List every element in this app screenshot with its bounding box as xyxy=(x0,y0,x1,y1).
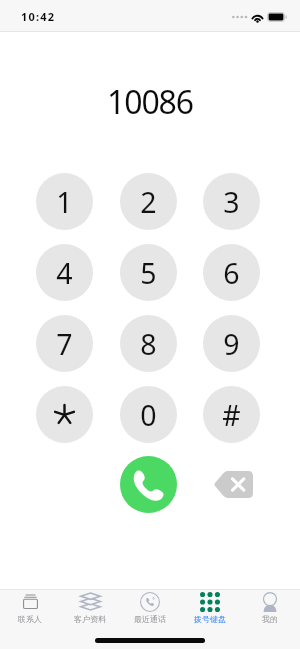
button[interactable]: 联系人 xyxy=(0,591,60,624)
staticText: 5 xyxy=(140,254,157,293)
button[interactable]: 2 xyxy=(120,173,177,230)
staticText: 6 xyxy=(223,254,240,293)
button[interactable]: 8 xyxy=(120,315,177,372)
button[interactable]: Delete xyxy=(213,471,253,498)
staticText: 10086 xyxy=(0,80,300,124)
staticText: 我的 xyxy=(262,614,278,624)
button[interactable]: 9 xyxy=(203,315,260,372)
button[interactable] xyxy=(36,386,93,443)
button[interactable]: 3 xyxy=(203,173,260,230)
button[interactable]: 0 xyxy=(120,386,177,443)
button[interactable]: 我的 xyxy=(240,591,300,624)
button[interactable]: 最近通话 xyxy=(120,591,180,624)
button[interactable]: Call xyxy=(120,456,177,513)
button[interactable]: 6 xyxy=(203,244,260,301)
staticText: 拨号键盘 xyxy=(194,614,226,624)
staticText: 2 xyxy=(140,183,157,222)
staticText: 1 xyxy=(56,183,73,222)
staticText: 3 xyxy=(223,183,240,222)
button[interactable]: # xyxy=(203,386,260,443)
button[interactable]: 7 xyxy=(36,315,93,372)
staticText: 客户资料 xyxy=(74,614,106,624)
button[interactable]: 1 xyxy=(36,173,93,230)
staticText: 联系人 xyxy=(18,614,42,624)
staticText: 7 xyxy=(56,325,73,364)
staticText: 0 xyxy=(140,396,157,435)
button[interactable]: 客户资料 xyxy=(60,591,120,624)
staticText: 10:42 xyxy=(21,9,56,24)
staticText: 9 xyxy=(223,325,240,364)
button[interactable]: 拨号键盘 xyxy=(180,591,240,624)
button[interactable]: 4 xyxy=(36,244,93,301)
staticText: 8 xyxy=(140,325,157,364)
staticText: 4 xyxy=(56,254,73,293)
staticText: # xyxy=(222,396,241,435)
staticText: 最近通话 xyxy=(134,614,166,624)
button[interactable]: 5 xyxy=(120,244,177,301)
